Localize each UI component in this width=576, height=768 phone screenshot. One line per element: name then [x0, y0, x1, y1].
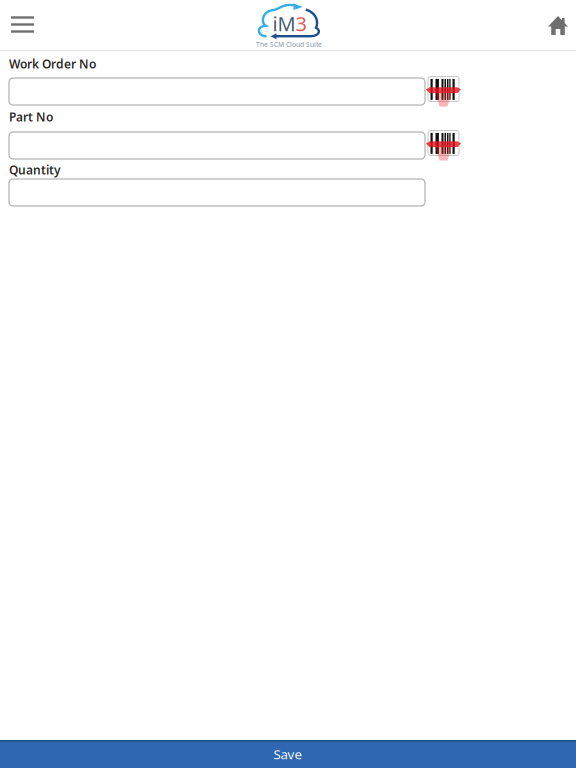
- button[interactable]: Save: [0, 740, 576, 768]
- staticText: Work Order No: [9, 56, 96, 72]
- staticText: Quantity: [9, 162, 61, 178]
- staticText: 3: [295, 10, 306, 37]
- button[interactable]: [9, 132, 425, 159]
- staticText: Part No: [9, 109, 53, 125]
- button[interactable]: [9, 78, 425, 105]
- staticText: Save: [273, 745, 302, 763]
- button[interactable]: Home: [534, 0, 576, 51]
- button[interactable]: Menu: [0, 0, 48, 51]
- button[interactable]: [9, 179, 425, 206]
- button[interactable]: Scan barcode: [426, 75, 462, 107]
- staticText: The SCM Cloud Suite: [256, 40, 322, 49]
- button[interactable]: Scan barcode: [426, 129, 462, 161]
- staticText: iM: [272, 10, 295, 37]
